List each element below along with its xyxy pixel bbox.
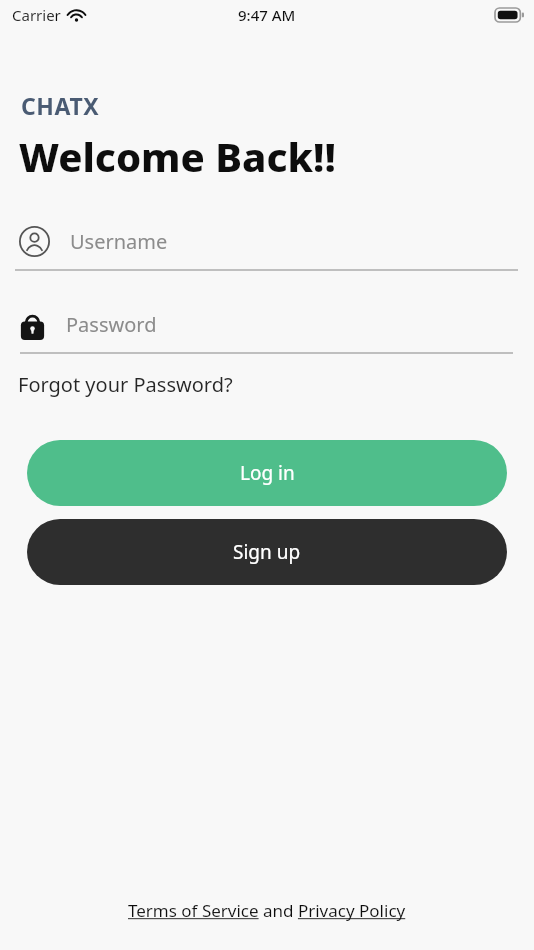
staticText: 9:47 AM	[238, 5, 296, 25]
button[interactable]: Log in	[27, 440, 507, 506]
staticText: Welcome Back!!	[19, 129, 336, 183]
button[interactable]: Sign up	[27, 519, 507, 585]
button[interactable]: Terms of Service and Privacy Policy	[128, 899, 406, 922]
staticText: Carrier	[12, 5, 61, 25]
staticText: Sign up	[233, 539, 301, 565]
staticText: Forgot your Password?	[18, 371, 233, 398]
staticText: Password	[66, 311, 157, 338]
staticText: CHATX	[21, 90, 100, 121]
staticText: Username	[70, 228, 168, 255]
button[interactable]: Password	[0, 296, 534, 354]
button[interactable]: Forgot your Password?	[18, 371, 233, 398]
staticText: Terms of Service and Privacy Policy	[128, 899, 406, 922]
staticText: Log in	[240, 460, 295, 486]
button[interactable]: Username	[0, 213, 534, 271]
